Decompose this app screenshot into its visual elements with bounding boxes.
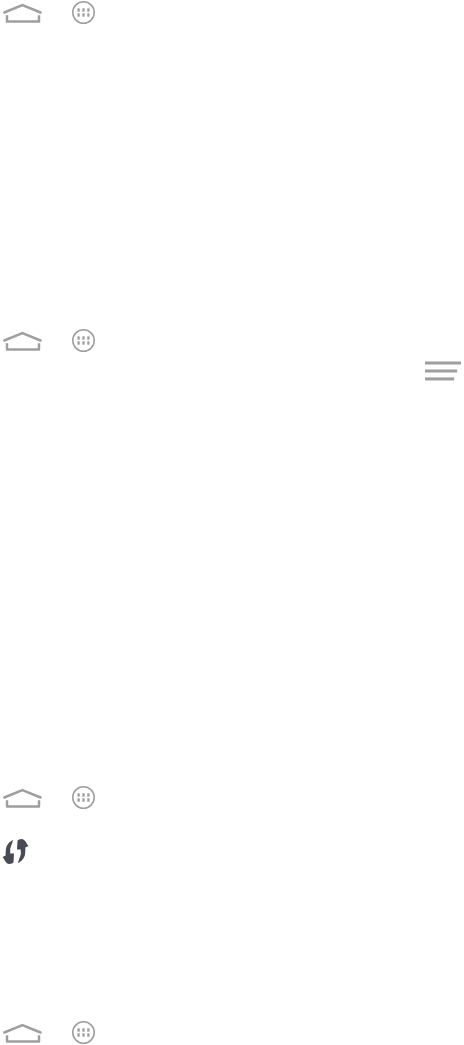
button[interactable]: All apps — [72, 786, 95, 809]
button[interactable]: All apps — [72, 1, 95, 24]
button[interactable]: Home — [2, 0, 46, 24]
button[interactable]: All apps — [72, 1021, 95, 1044]
button[interactable]: Home — [2, 328, 46, 352]
button[interactable]: Sort — [425, 360, 461, 381]
button[interactable]: All apps — [72, 329, 95, 352]
button[interactable]: Home — [2, 785, 46, 809]
button[interactable]: Sync — [0, 836, 31, 867]
button[interactable]: Home — [2, 1020, 46, 1044]
